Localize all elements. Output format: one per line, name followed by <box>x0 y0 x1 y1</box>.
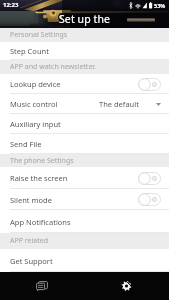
button[interactable]: Music control <box>0 94 169 114</box>
staticText: The default <box>99 99 139 109</box>
staticText: Get Support <box>10 256 53 266</box>
button[interactable]: Get Support <box>0 249 169 272</box>
button[interactable]: Lookup device <box>0 74 169 94</box>
staticText: App Notifications <box>10 217 71 227</box>
button[interactable]: Raise the screen <box>0 167 169 189</box>
staticText: Music control <box>10 99 58 109</box>
staticText: Step Count <box>10 46 49 56</box>
staticText: 12:23 <box>3 1 19 9</box>
button[interactable]: Step Count <box>0 42 169 60</box>
staticText: Auxiliary input <box>10 119 61 129</box>
staticText: APP related <box>10 236 48 246</box>
staticText: Raise the screen <box>10 173 68 183</box>
staticText: Lookup device <box>10 79 61 89</box>
staticText: Set up the <box>59 12 111 26</box>
button[interactable]: App Notifications <box>0 210 169 233</box>
staticText: 53% <box>154 2 166 9</box>
button[interactable]: Messages <box>0 272 84 300</box>
staticText: Send File <box>10 139 42 149</box>
staticText: Personal Settings <box>10 30 68 40</box>
staticText: APP and watch newsletter. <box>10 62 96 72</box>
staticText: The phone Settings <box>10 156 74 166</box>
button[interactable]: Silent mode <box>0 189 169 210</box>
button[interactable]: Auxiliary input <box>0 114 169 134</box>
button[interactable]: Settings <box>84 272 169 300</box>
staticText: Silent mode <box>10 195 52 205</box>
button[interactable]: Send File <box>0 134 169 154</box>
